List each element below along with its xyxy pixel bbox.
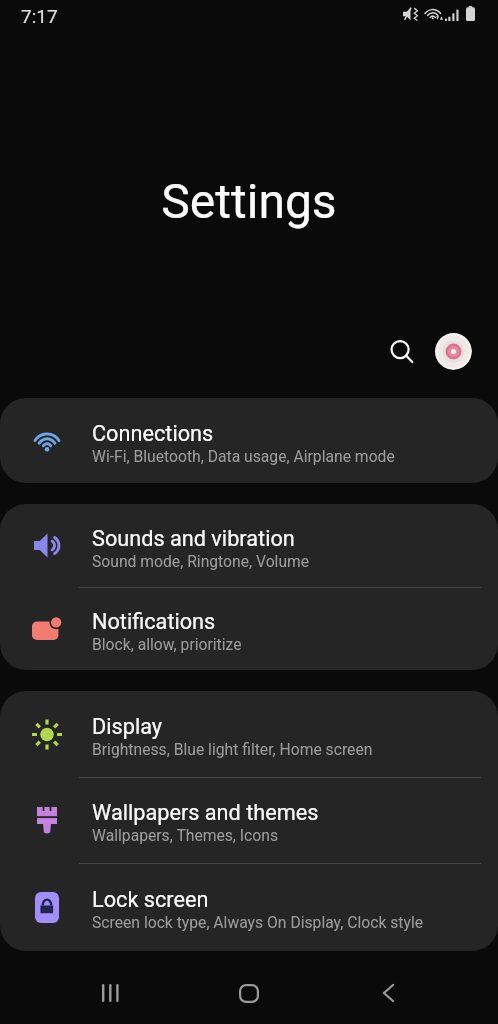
button[interactable]: Back xyxy=(364,969,412,1017)
button[interactable]: Sounds and vibration xyxy=(0,504,498,587)
staticText: Settings xyxy=(0,173,498,229)
button[interactable]: Search xyxy=(378,328,426,376)
staticText: Screen lock type, Always On Display, Clo… xyxy=(92,913,424,931)
button[interactable]: Recents xyxy=(86,969,134,1017)
staticText: Brightness, Blue light filter, Home scre… xyxy=(92,740,373,758)
staticText: Wi-Fi, Bluetooth, Data usage, Airplane m… xyxy=(92,447,395,465)
staticText: Wallpapers and themes xyxy=(92,800,319,825)
button[interactable]: Lock screen xyxy=(0,863,498,951)
staticText: Wallpapers, Themes, Icons xyxy=(92,826,279,844)
button[interactable]: Connections xyxy=(0,398,498,483)
staticText: Sounds and vibration xyxy=(92,526,295,551)
button[interactable]: Home xyxy=(225,969,273,1017)
button[interactable]: Account xyxy=(434,332,472,370)
button[interactable]: Display xyxy=(0,691,498,777)
button[interactable]: Wallpapers and themes xyxy=(0,777,498,863)
staticText: Connections xyxy=(92,421,214,446)
button[interactable]: Notifications xyxy=(0,587,498,670)
staticText: Display xyxy=(92,714,163,739)
staticText: Block, allow, prioritize xyxy=(92,635,242,653)
staticText: Lock screen xyxy=(92,887,209,912)
staticText: Notifications xyxy=(92,609,216,634)
staticText: Sound mode, Ringtone, Volume xyxy=(92,552,310,570)
staticText: 7:17 xyxy=(21,5,58,27)
